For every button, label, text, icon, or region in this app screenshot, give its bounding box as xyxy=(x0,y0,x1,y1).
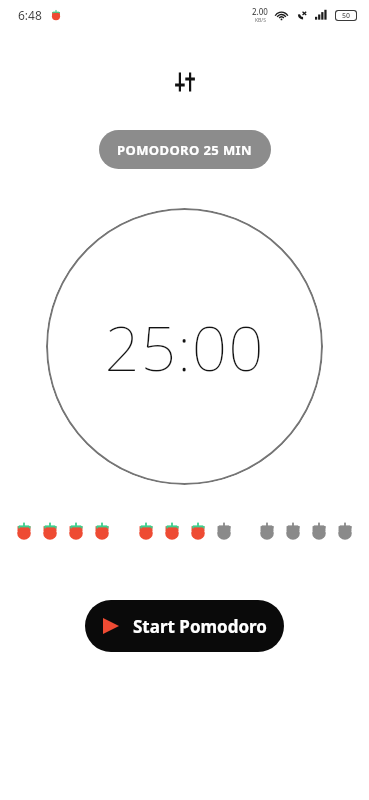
button[interactable]: Start Pomodoro xyxy=(85,600,284,652)
staticText: Start Pomodoro xyxy=(133,615,267,638)
staticText: KB/S xyxy=(255,17,266,24)
staticText: 50 xyxy=(342,11,351,20)
staticText: 2.00 xyxy=(252,6,268,17)
button[interactable]: Settings xyxy=(163,60,207,104)
staticText: 25:00 xyxy=(104,305,265,389)
button[interactable]: 25:00 xyxy=(46,208,323,485)
staticText: 6:48 xyxy=(18,7,42,23)
button[interactable]: POMODORO 25 MIN xyxy=(99,130,271,169)
staticText: POMODORO 25 MIN xyxy=(117,141,253,159)
